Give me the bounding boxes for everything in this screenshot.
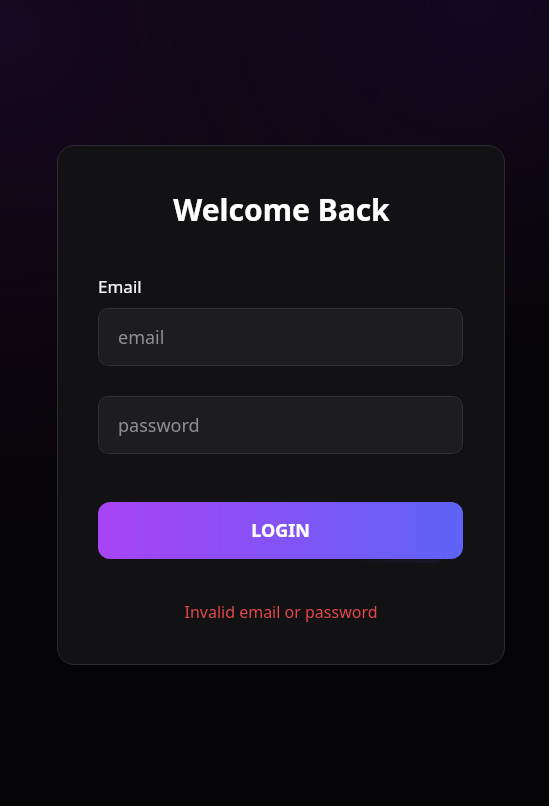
staticText: Invalid email or password: [184, 601, 378, 623]
staticText: LOGIN: [251, 518, 310, 543]
button[interactable]: LOGIN: [98, 502, 463, 559]
staticText: password: [118, 413, 200, 438]
staticText: Welcome Back: [173, 189, 390, 230]
staticText: email: [118, 325, 165, 350]
staticText: Email: [98, 275, 142, 298]
button[interactable]: email: [98, 308, 463, 366]
button[interactable]: password: [98, 396, 463, 454]
